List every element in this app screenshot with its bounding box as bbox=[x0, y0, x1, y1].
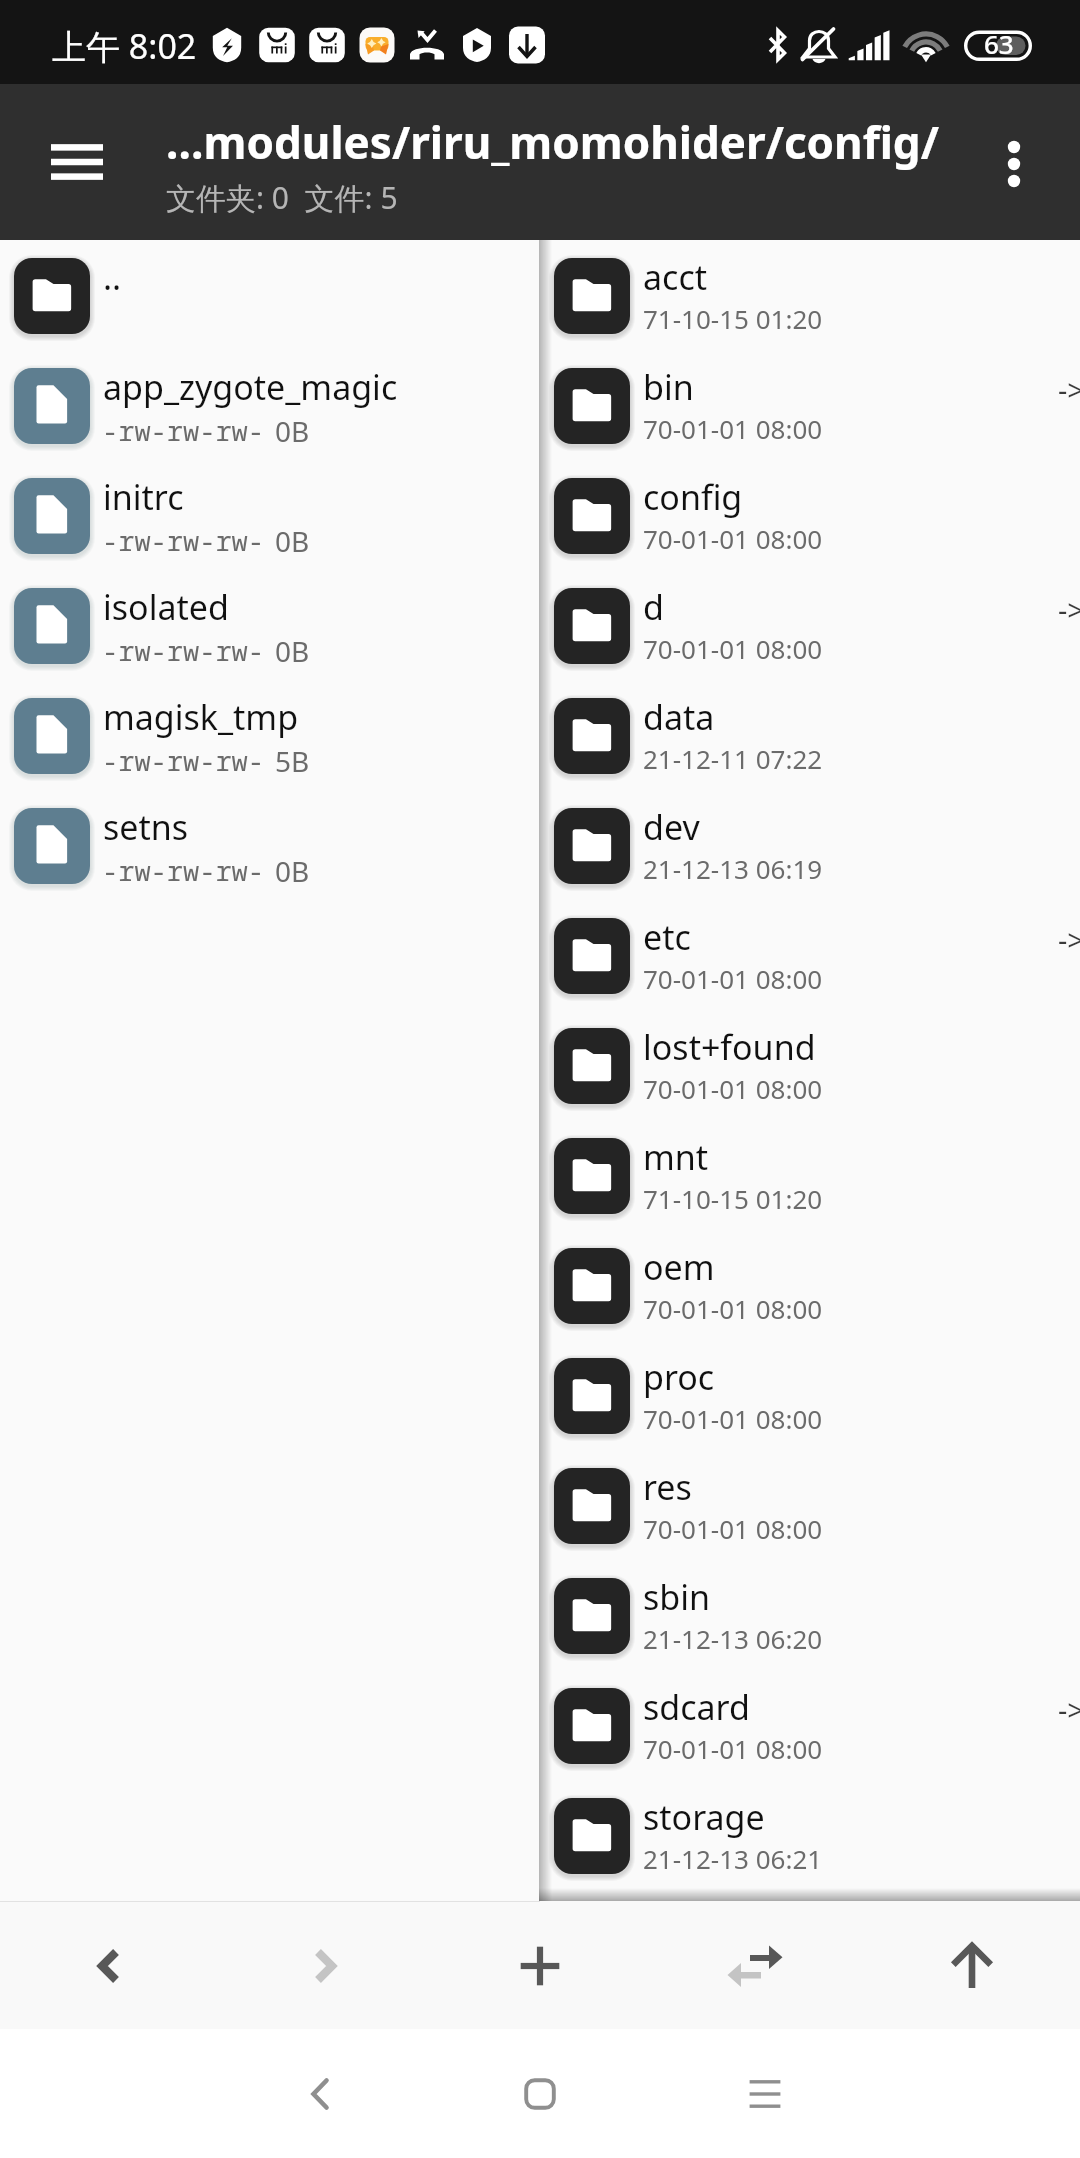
staticText: config bbox=[643, 474, 743, 520]
button[interactable]: data bbox=[539, 698, 1080, 808]
staticText: 21-12-13 06:20 bbox=[643, 1621, 823, 1656]
staticText: oem bbox=[643, 1244, 715, 1290]
staticText: -rw-rw-rw- bbox=[102, 522, 264, 559]
staticText: -rw-rw-rw- bbox=[102, 742, 264, 779]
button[interactable]: Home bbox=[490, 2044, 590, 2144]
staticText: 上午 8:02 bbox=[52, 23, 197, 69]
button[interactable]: storage bbox=[539, 1798, 1080, 1908]
button[interactable]: Recent apps bbox=[715, 2044, 815, 2144]
staticText: 70-01-01 08:00 bbox=[643, 1291, 823, 1326]
staticText: 70-01-01 08:00 bbox=[643, 1731, 823, 1766]
staticText: 63 bbox=[984, 26, 1014, 61]
staticText: 71-10-15 01:20 bbox=[643, 1181, 823, 1216]
button[interactable]: magisk_tmp bbox=[0, 698, 539, 808]
staticText: 21-12-13 06:19 bbox=[643, 851, 823, 886]
staticText: 0B bbox=[275, 852, 310, 890]
staticText: proc bbox=[643, 1354, 715, 1400]
button[interactable]: New bbox=[485, 1911, 595, 2021]
staticText: app_zygote_magic bbox=[103, 364, 398, 410]
staticText: 0B bbox=[275, 412, 310, 450]
staticText: initrc bbox=[103, 474, 184, 520]
staticText: …modules/riru_momohider/config/ bbox=[166, 112, 939, 172]
staticText: d bbox=[643, 584, 664, 630]
staticText: etc bbox=[643, 914, 691, 960]
staticText: -> bbox=[1058, 1690, 1080, 1729]
button[interactable]: app_zygote_magic bbox=[0, 368, 539, 478]
staticText: lost+found bbox=[643, 1024, 816, 1070]
staticText: 70-01-01 08:00 bbox=[643, 521, 823, 556]
button[interactable]: dev bbox=[539, 808, 1080, 918]
staticText: .. bbox=[103, 254, 122, 300]
staticText: storage bbox=[643, 1794, 765, 1840]
button[interactable]: Up bbox=[917, 1911, 1027, 2021]
button[interactable]: isolated bbox=[0, 588, 539, 698]
staticText: -> bbox=[1058, 590, 1080, 629]
button[interactable]: res bbox=[539, 1468, 1080, 1578]
button[interactable]: Navigation drawer bbox=[30, 115, 124, 209]
staticText: bin bbox=[643, 364, 694, 410]
staticText: -> bbox=[1058, 370, 1080, 409]
staticText: sbin bbox=[643, 1574, 710, 1620]
button[interactable]: More options bbox=[969, 119, 1059, 209]
staticText: -> bbox=[1058, 920, 1080, 959]
staticText: 70-01-01 08:00 bbox=[643, 411, 823, 446]
staticText: 21-12-13 06:21 bbox=[643, 1841, 823, 1876]
staticText: setns bbox=[103, 804, 189, 850]
button[interactable]: mnt bbox=[539, 1138, 1080, 1248]
staticText: mnt bbox=[643, 1134, 709, 1180]
staticText: 70-01-01 08:00 bbox=[643, 1511, 823, 1546]
staticText: acct bbox=[643, 254, 707, 300]
staticText: -rw-rw-rw- bbox=[102, 632, 264, 669]
staticText: dev bbox=[643, 804, 700, 850]
button[interactable]: d bbox=[539, 588, 1080, 698]
staticText: 21-12-11 07:22 bbox=[643, 741, 823, 776]
button[interactable]: proc bbox=[539, 1358, 1080, 1468]
button[interactable]: initrc bbox=[0, 478, 539, 588]
button[interactable]: config bbox=[539, 478, 1080, 588]
button[interactable]: oem bbox=[539, 1248, 1080, 1358]
staticText: 70-01-01 08:00 bbox=[643, 1071, 823, 1106]
button[interactable]: bin bbox=[539, 368, 1080, 478]
staticText: 5B bbox=[275, 742, 310, 780]
button[interactable]: Back bbox=[54, 1911, 164, 2021]
staticText: 70-01-01 08:00 bbox=[643, 1401, 823, 1436]
staticText: 0B bbox=[275, 632, 310, 670]
button[interactable]: sbin bbox=[539, 1578, 1080, 1688]
staticText: sdcard bbox=[643, 1684, 750, 1730]
button[interactable]: etc bbox=[539, 918, 1080, 1028]
button[interactable]: acct bbox=[539, 258, 1080, 368]
staticText: -rw-rw-rw- bbox=[102, 412, 264, 449]
staticText: 70-01-01 08:00 bbox=[643, 961, 823, 996]
staticText: data bbox=[643, 694, 715, 740]
staticText: 70-01-01 08:00 bbox=[643, 631, 823, 666]
staticText: 71-10-15 01:20 bbox=[643, 301, 823, 336]
button[interactable]: setns bbox=[0, 808, 539, 918]
button[interactable]: Back bbox=[270, 2044, 370, 2144]
button[interactable]: sdcard bbox=[539, 1688, 1080, 1798]
staticText: res bbox=[643, 1464, 692, 1510]
button[interactable]: Transfer bbox=[700, 1911, 810, 2021]
staticText: 文件夹: 0 文件: 5 bbox=[166, 177, 398, 218]
button[interactable]: .. bbox=[0, 258, 539, 368]
staticText: 0B bbox=[275, 522, 310, 560]
button[interactable]: Forward bbox=[270, 1911, 380, 2021]
staticText: isolated bbox=[103, 584, 229, 630]
staticText: magisk_tmp bbox=[103, 694, 299, 740]
button[interactable]: lost+found bbox=[539, 1028, 1080, 1138]
staticText: -rw-rw-rw- bbox=[102, 852, 264, 889]
